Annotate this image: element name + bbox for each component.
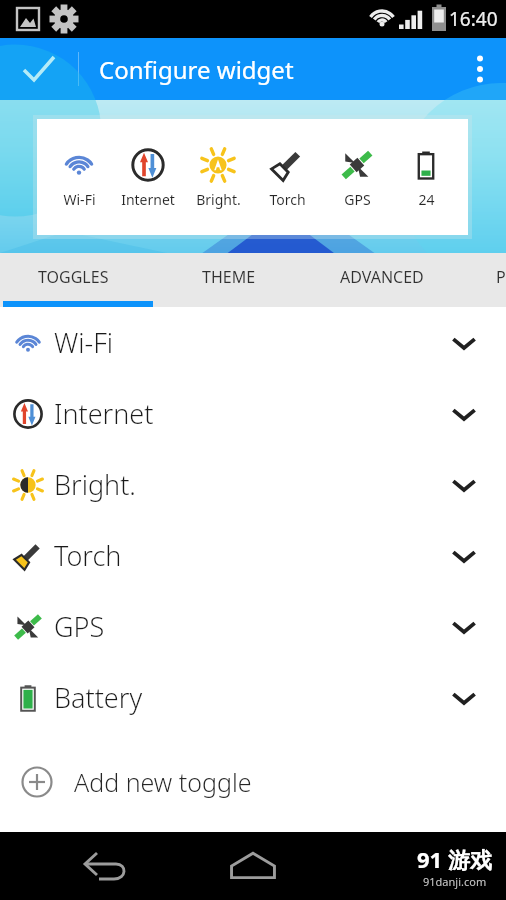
button[interactable]: Back xyxy=(76,839,130,893)
button[interactable]: More options xyxy=(454,38,506,100)
button[interactable]: Bright. xyxy=(0,449,506,520)
staticText: GPS xyxy=(344,190,371,209)
button[interactable]: Torch xyxy=(0,520,506,591)
button[interactable]: GPS xyxy=(325,146,389,209)
staticText: Wi-Fi xyxy=(54,324,114,361)
button[interactable]: THEME xyxy=(202,266,256,288)
button[interactable]: Home xyxy=(224,837,282,895)
staticText: 91danji.com xyxy=(423,874,487,889)
staticText: Configure widget xyxy=(99,53,294,86)
button[interactable]: 24 xyxy=(394,146,458,209)
button[interactable]: Internet xyxy=(0,378,506,449)
button[interactable]: Add new toggle xyxy=(0,753,506,811)
staticText: 16:40 xyxy=(449,6,498,32)
button[interactable]: Wi-Fi xyxy=(37,119,468,235)
button[interactable]: GPS xyxy=(0,591,506,662)
staticText: 24 xyxy=(418,190,435,209)
button[interactable]: Internet xyxy=(116,146,180,209)
button[interactable]: Torch xyxy=(255,146,319,209)
staticText: Bright. xyxy=(54,466,136,503)
staticText: Add new toggle xyxy=(74,765,252,799)
staticText: GPS xyxy=(54,608,105,645)
button[interactable]: ADVANCED xyxy=(340,266,424,288)
staticText: Internet xyxy=(121,190,175,209)
staticText: Bright. xyxy=(196,190,241,209)
staticText: Torch xyxy=(269,190,306,209)
button[interactable]: P xyxy=(496,266,506,288)
staticText: Torch xyxy=(54,537,122,574)
button[interactable]: Battery xyxy=(0,662,506,733)
button[interactable]: Wi-Fi xyxy=(47,146,111,209)
button[interactable]: TOGGLES xyxy=(38,266,109,288)
staticText: Battery xyxy=(54,679,143,716)
button[interactable]: Bright. xyxy=(186,146,250,209)
staticText: Internet xyxy=(54,395,154,432)
staticText: Wi-Fi xyxy=(63,190,96,209)
button[interactable]: Done xyxy=(0,38,78,100)
staticText: 91 游戏 xyxy=(417,844,492,874)
button[interactable]: Wi-Fi xyxy=(0,307,506,378)
